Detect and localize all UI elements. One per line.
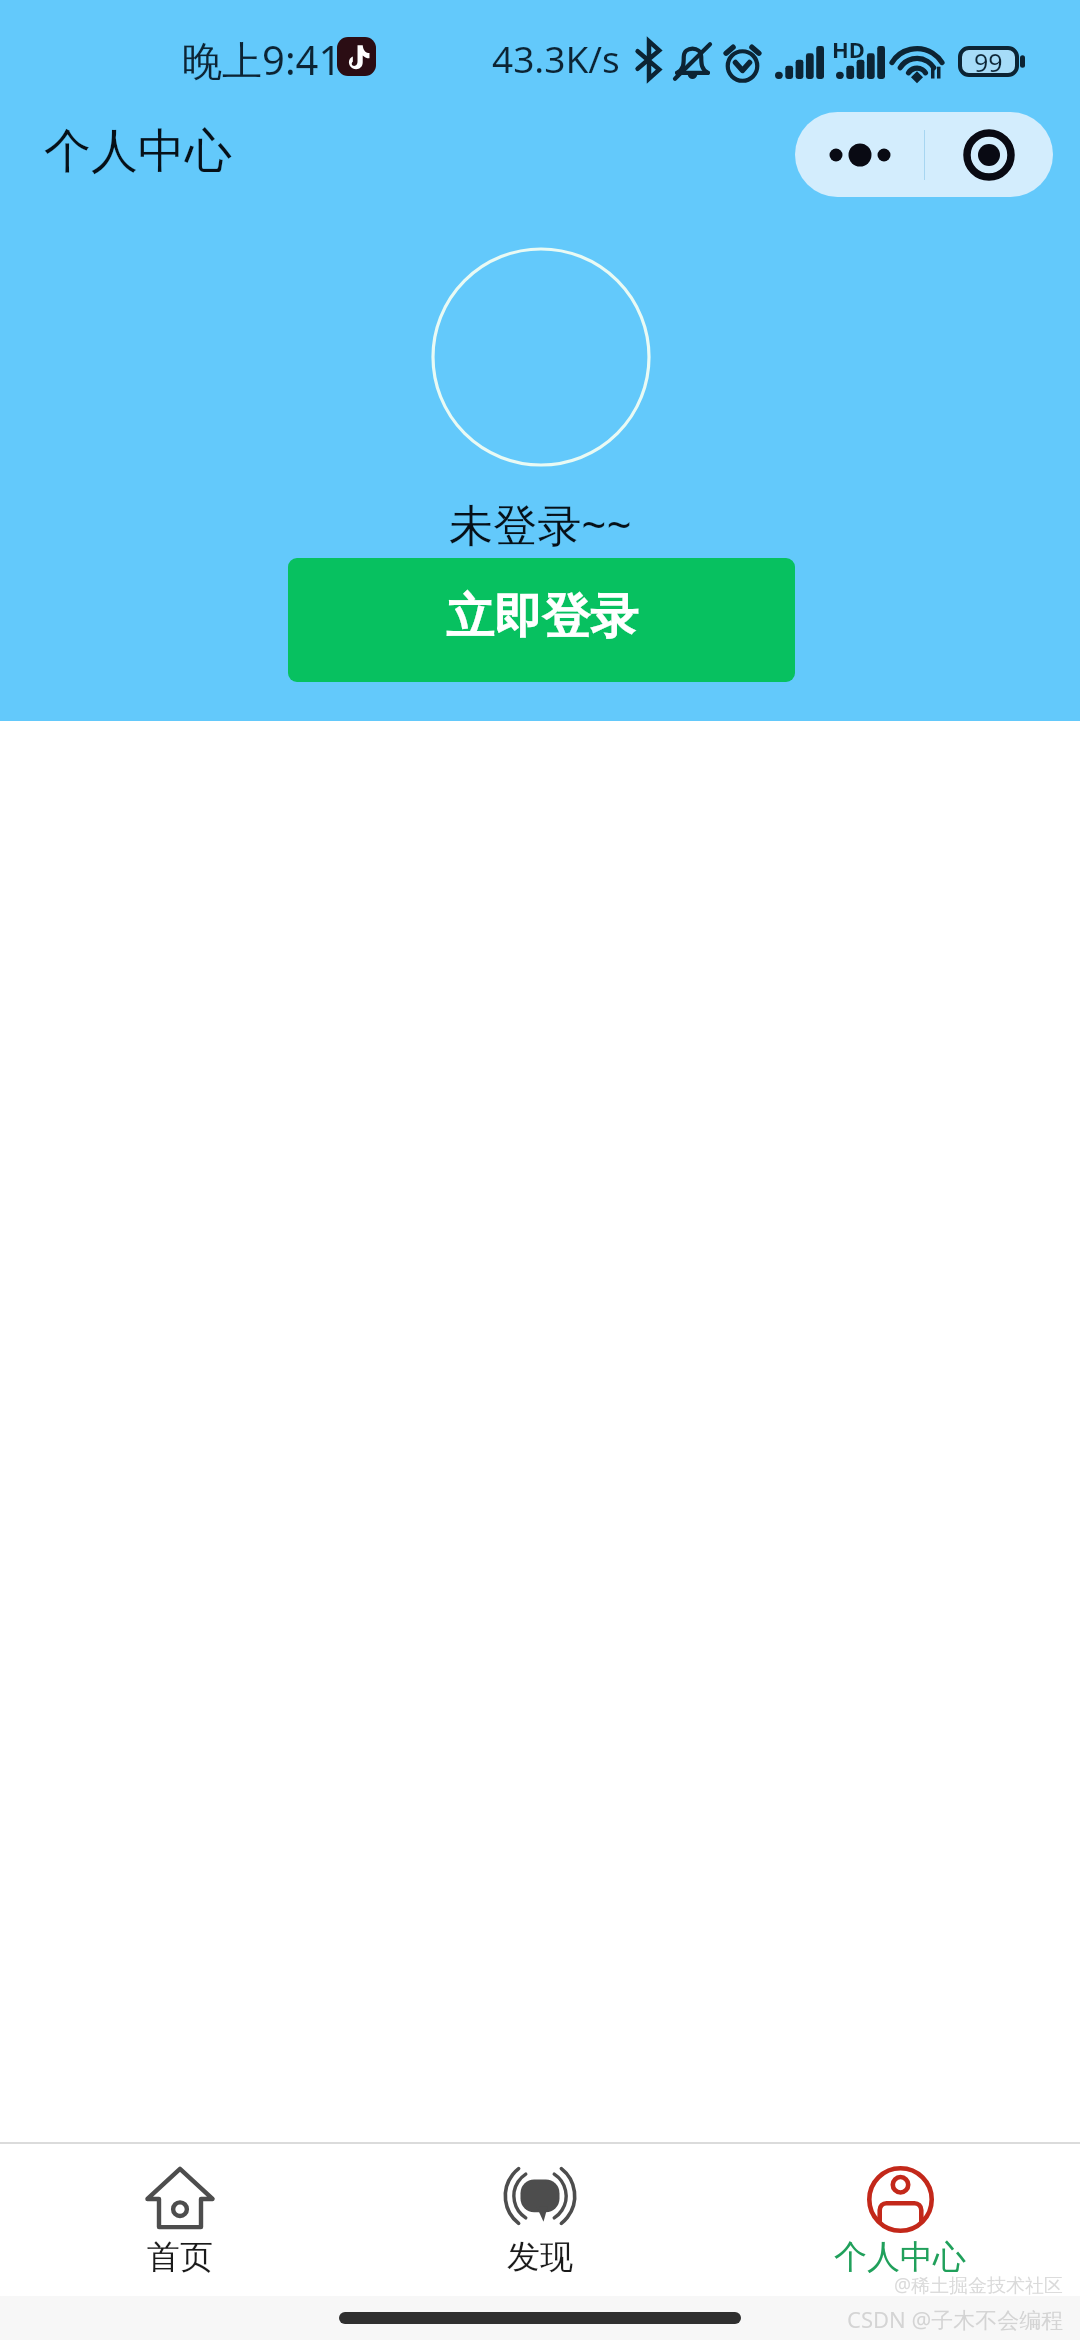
- button[interactable]: 首页: [0, 2144, 360, 2296]
- staticText: 个人中心: [44, 122, 232, 181]
- button[interactable]: 用户头像: [431, 247, 651, 467]
- staticText: 立即登录: [446, 587, 638, 647]
- staticText: 99: [974, 45, 1003, 76]
- staticText: 43.3K/s: [492, 33, 620, 83]
- staticText: 首页: [147, 2236, 213, 2278]
- button[interactable]: 关闭: [925, 112, 1053, 197]
- staticText: CSDN @子木不会编程: [847, 2304, 1064, 2334]
- button[interactable]: 发现: [360, 2144, 720, 2296]
- staticText: HD: [832, 34, 865, 64]
- staticText: @稀土掘金技术社区: [894, 2272, 1064, 2298]
- staticText: 个人中心: [834, 2236, 966, 2278]
- button[interactable]: 立即登录: [288, 558, 795, 682]
- staticText: 未登录~~: [449, 494, 632, 554]
- button[interactable]: 个人中心: [720, 2144, 1080, 2296]
- button[interactable]: 更多: [795, 112, 924, 197]
- staticText: 发现: [507, 2236, 573, 2278]
- staticText: 晚上9:41: [182, 32, 342, 87]
